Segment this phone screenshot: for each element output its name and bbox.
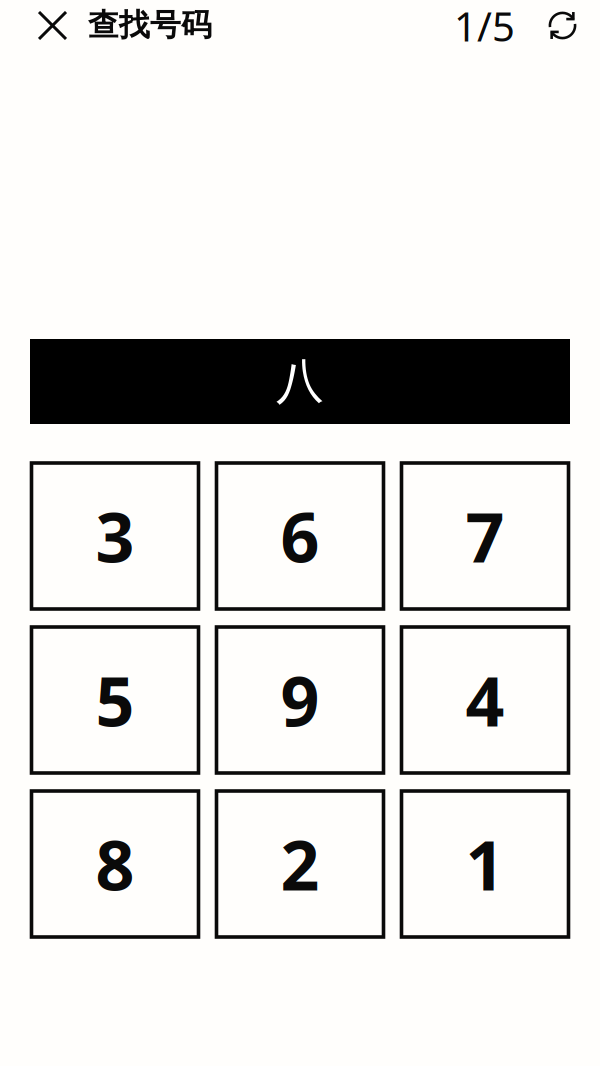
staticText: 9 xyxy=(280,655,319,745)
staticText: 3 xyxy=(95,491,134,581)
staticText: 7 xyxy=(465,491,504,581)
staticText: 2 xyxy=(280,819,319,909)
staticText: 5 xyxy=(95,655,134,745)
button[interactable]: 1 xyxy=(401,791,568,937)
staticText: 1 xyxy=(465,819,504,909)
button[interactable]: 6 xyxy=(216,463,383,609)
button[interactable]: 5 xyxy=(31,627,198,773)
button[interactable]: 9 xyxy=(216,627,383,773)
button[interactable]: 7 xyxy=(401,463,568,609)
staticText: 八 xyxy=(276,352,324,411)
button[interactable]: 3 xyxy=(31,463,198,609)
staticText: 6 xyxy=(280,491,319,581)
button[interactable]: 4 xyxy=(401,627,568,773)
staticText: 4 xyxy=(465,655,504,745)
staticText: 1/5 xyxy=(454,0,515,52)
button[interactable]: Restart round xyxy=(515,0,600,50)
button[interactable]: 8 xyxy=(31,791,198,937)
staticText: 查找号码 xyxy=(88,6,212,44)
staticText: 8 xyxy=(95,819,134,909)
button[interactable]: 2 xyxy=(216,791,383,937)
button[interactable]: Close xyxy=(0,0,88,50)
